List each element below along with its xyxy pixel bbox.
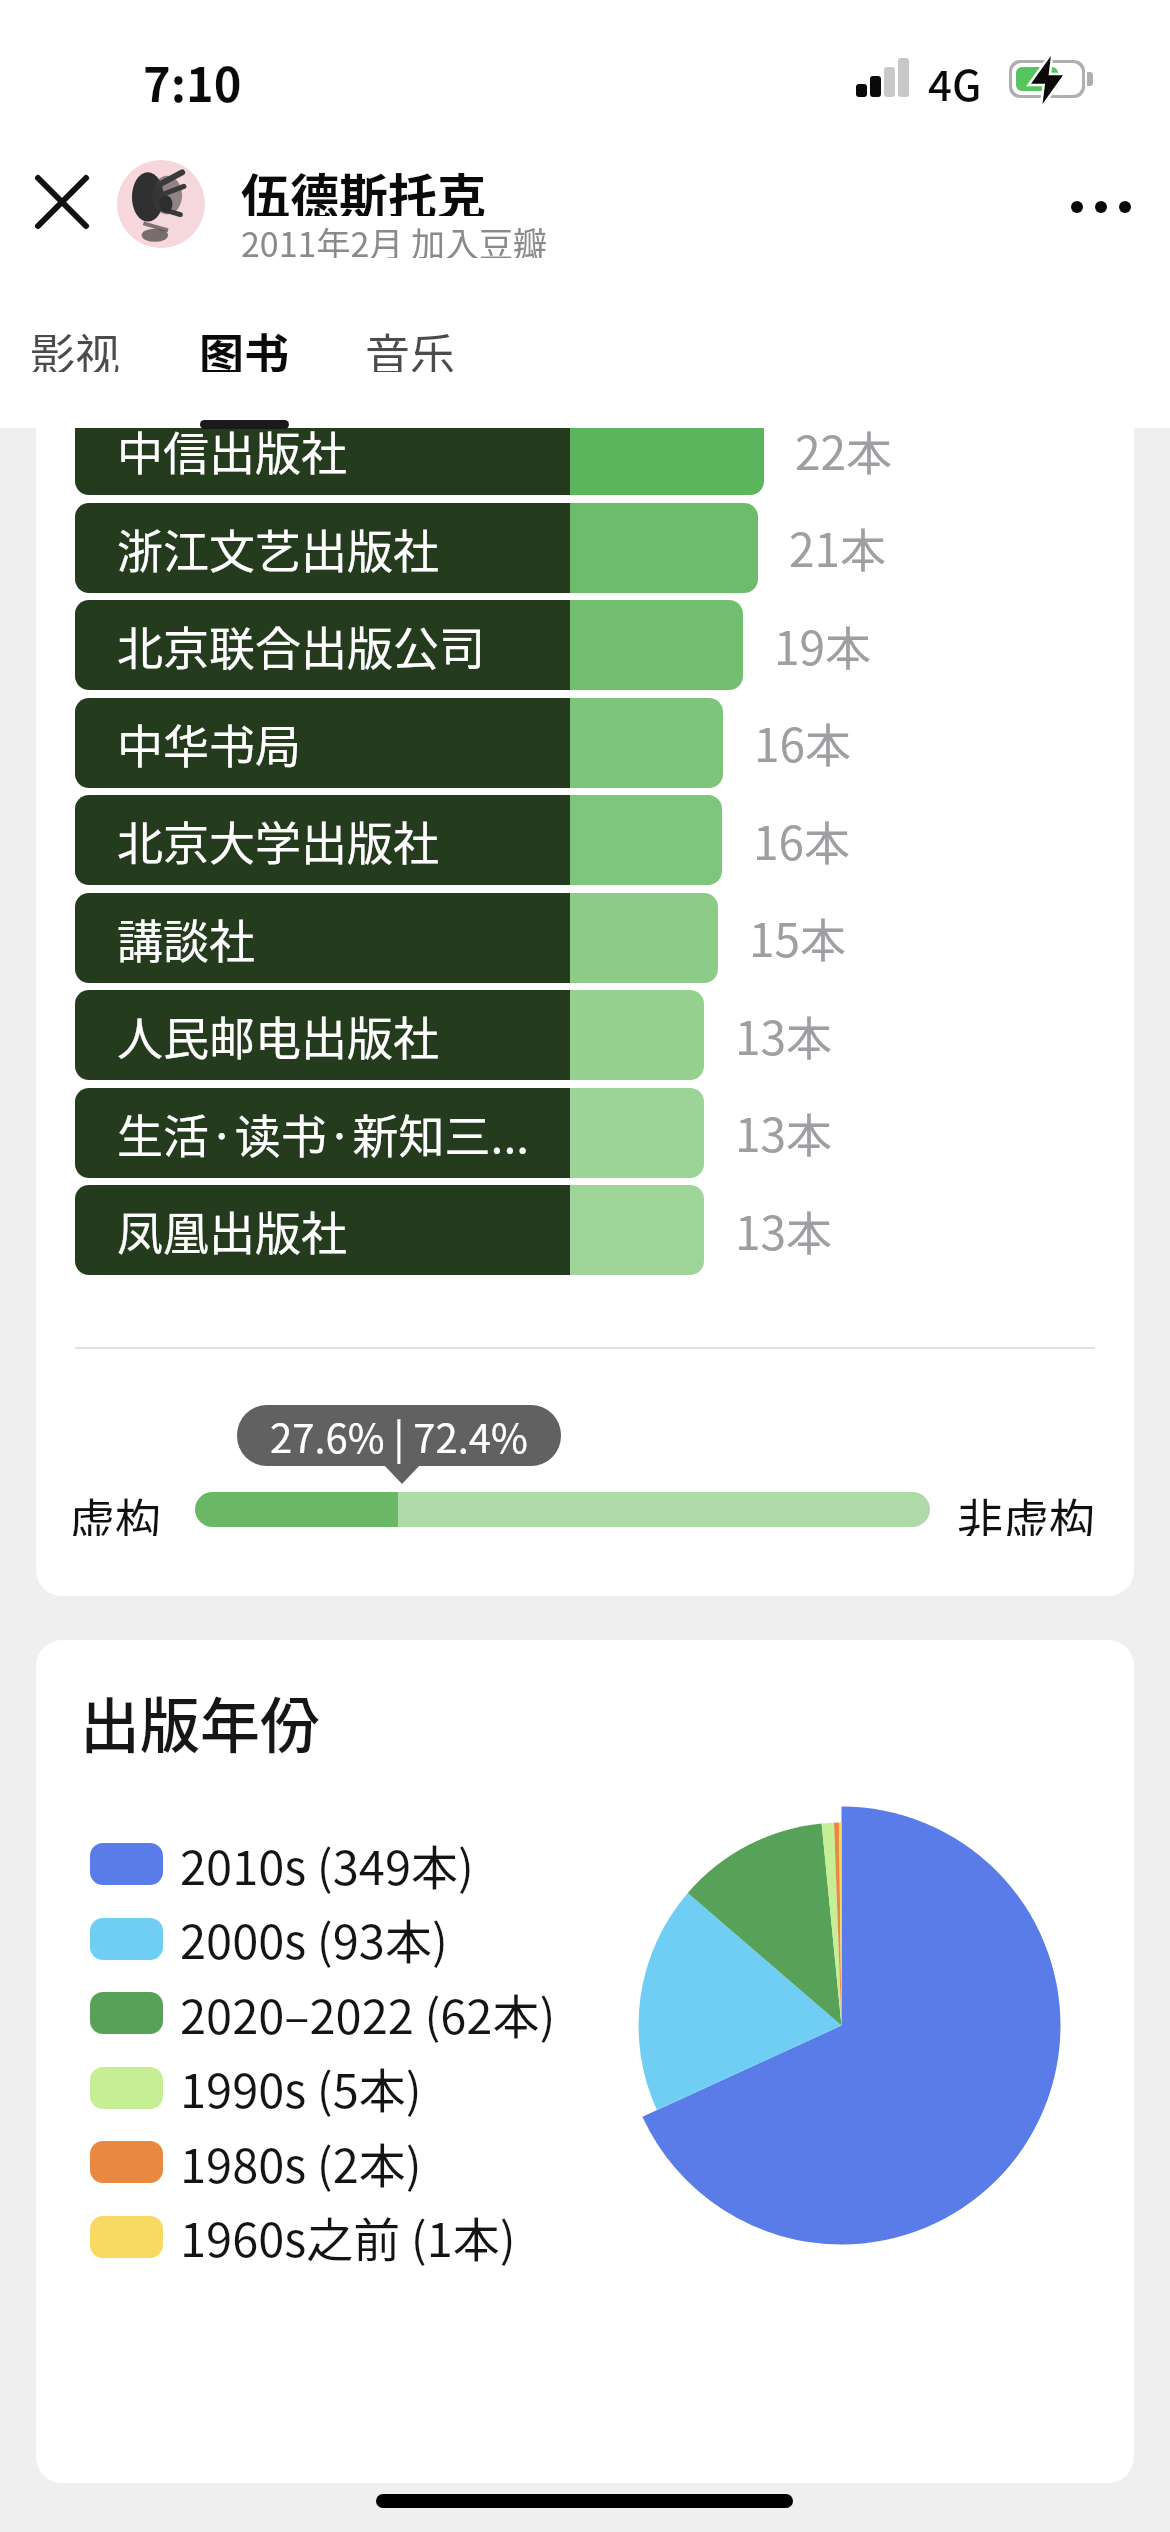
staticText: 1990s (5本)	[180, 2053, 422, 2121]
staticText: 13本	[735, 1197, 833, 1264]
staticText: 講談社	[117, 905, 255, 972]
staticText: 音乐	[365, 320, 456, 372]
staticText: 浙江文艺出版社	[117, 515, 439, 582]
button[interactable]	[90, 2216, 163, 2258]
staticText: 7:10	[143, 47, 242, 103]
button[interactable]: 人民邮电出版社	[75, 990, 704, 1080]
button[interactable]	[90, 2141, 163, 2183]
button[interactable]	[1060, 180, 1150, 234]
staticText: 北京联合出版公司	[117, 612, 485, 679]
staticText: 人民邮电出版社	[117, 1002, 439, 1069]
button[interactable]	[195, 1492, 930, 1527]
button[interactable]	[38, 178, 86, 226]
staticText: 影视	[30, 320, 121, 372]
staticText: 中信出版社	[117, 428, 347, 484]
button[interactable]: 影视	[30, 320, 180, 372]
staticText: 伍德斯托克	[241, 158, 487, 216]
button[interactable]: 音乐	[365, 320, 515, 372]
staticText: 虚构	[69, 1484, 161, 1536]
staticText: 生活·读书·新知三...	[117, 1100, 529, 1167]
staticText: 出版年份	[80, 1678, 320, 1762]
staticText: 1980s (2本)	[180, 2128, 422, 2196]
button[interactable]	[90, 2067, 163, 2109]
staticText: 15本	[749, 904, 847, 971]
staticText: 图书	[199, 320, 290, 372]
staticText: 4G	[928, 52, 982, 102]
staticText: 27.6% | 72.4%	[270, 1407, 528, 1465]
staticText: 13本	[735, 1002, 833, 1069]
button[interactable]	[117, 160, 205, 248]
button[interactable]	[90, 1918, 163, 1960]
button[interactable]: 北京联合出版公司	[75, 600, 743, 690]
staticText: 2011年2月 加入豆瓣	[241, 218, 547, 258]
staticText: 22本	[795, 428, 893, 484]
staticText: 北京大学出版社	[117, 807, 439, 874]
staticText: 中华书局	[117, 710, 301, 777]
staticText: 2000s (93本)	[180, 1904, 448, 1972]
button[interactable]	[90, 1843, 163, 1885]
staticText: 16本	[754, 709, 852, 776]
staticText: 1960s之前 (1本)	[180, 2202, 516, 2270]
staticText: 凤凰出版社	[117, 1197, 347, 1264]
staticText: 非虚构	[957, 1484, 1095, 1536]
button[interactable]	[90, 1992, 163, 2034]
button[interactable]: 生活·读书·新知三...	[75, 1088, 704, 1178]
staticText: 21本	[789, 514, 887, 581]
staticText: 2010s (349本)	[180, 1830, 474, 1898]
staticText: 19本	[774, 612, 872, 679]
button[interactable]: 图书	[199, 320, 349, 372]
staticText: 16本	[753, 807, 851, 874]
button[interactable]: 中华书局	[75, 698, 723, 788]
button[interactable]: 中信出版社	[75, 428, 764, 495]
button[interactable]: 凤凰出版社	[75, 1185, 704, 1275]
button[interactable]: 浙江文艺出版社	[75, 503, 758, 593]
staticText: 13本	[735, 1099, 833, 1166]
staticText: 2020–2022 (62本)	[180, 1979, 556, 2047]
button[interactable]: 北京大学出版社	[75, 795, 722, 885]
button[interactable]: 講談社	[75, 893, 718, 983]
